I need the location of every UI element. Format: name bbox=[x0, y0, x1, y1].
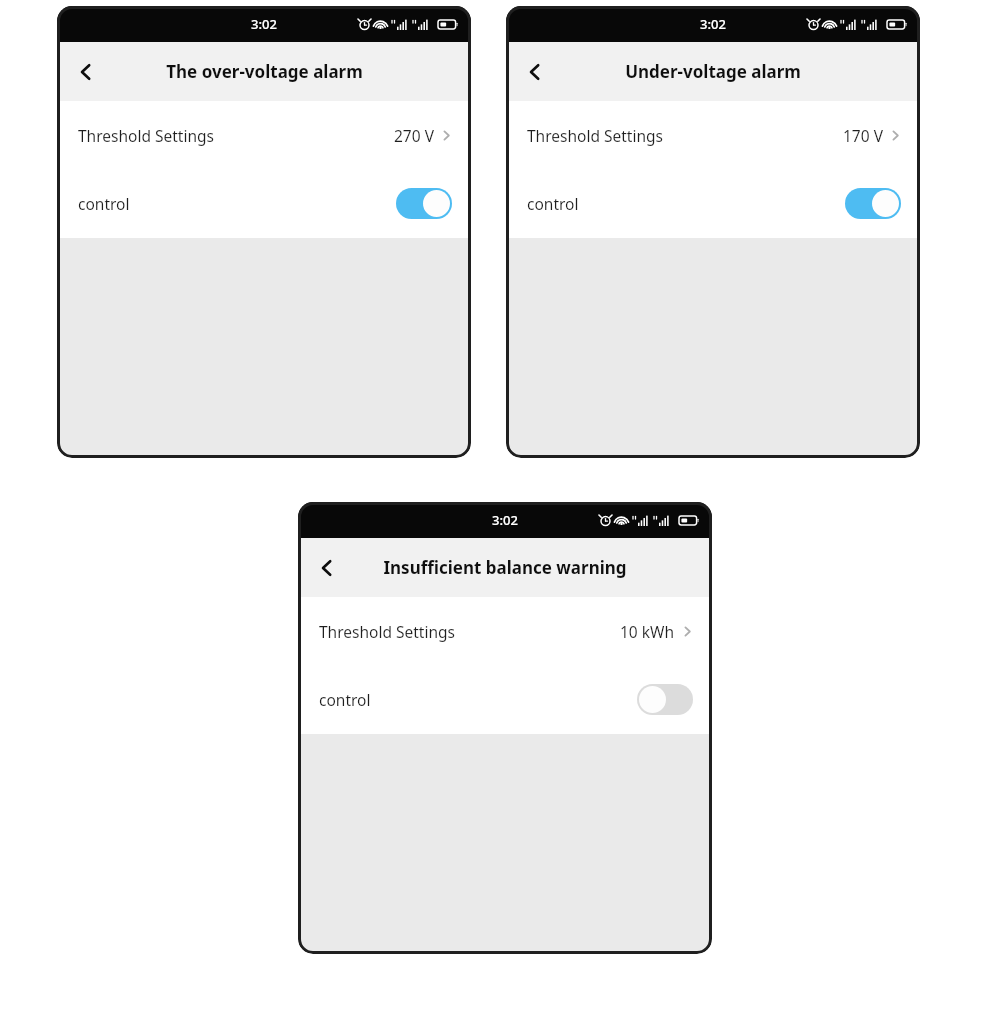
staticText: control bbox=[527, 193, 579, 214]
button[interactable]: Threshold Settings bbox=[57, 101, 471, 169]
button[interactable]: Back bbox=[65, 51, 107, 93]
button[interactable]: Threshold Settings bbox=[506, 101, 920, 169]
button[interactable]: control bbox=[298, 665, 712, 734]
button[interactable]: Control on bbox=[396, 188, 452, 219]
button[interactable]: Control on bbox=[845, 188, 901, 219]
staticText: Threshold Settings bbox=[527, 125, 663, 146]
staticText: 3:02 bbox=[700, 15, 726, 33]
staticText: Under-voltage alarm bbox=[625, 60, 801, 83]
button[interactable]: Threshold Settings bbox=[298, 597, 712, 665]
staticText: Threshold Settings bbox=[78, 125, 214, 146]
staticText: 3:02 bbox=[251, 15, 277, 33]
button[interactable]: control bbox=[506, 169, 920, 238]
button[interactable]: Back bbox=[514, 51, 556, 93]
staticText: control bbox=[78, 193, 130, 214]
button[interactable]: control bbox=[57, 169, 471, 238]
button[interactable]: Control off bbox=[637, 684, 693, 715]
staticText: The over-voltage alarm bbox=[166, 60, 363, 83]
staticText: Threshold Settings bbox=[319, 621, 455, 642]
staticText: Insufficient balance warning bbox=[383, 556, 627, 579]
button[interactable]: Back bbox=[306, 547, 348, 589]
staticText: 170 V bbox=[843, 125, 883, 146]
staticText: 270 V bbox=[394, 125, 434, 146]
staticText: 3:02 bbox=[492, 511, 518, 529]
staticText: control bbox=[319, 689, 371, 710]
staticText: 10 kWh bbox=[620, 621, 675, 642]
